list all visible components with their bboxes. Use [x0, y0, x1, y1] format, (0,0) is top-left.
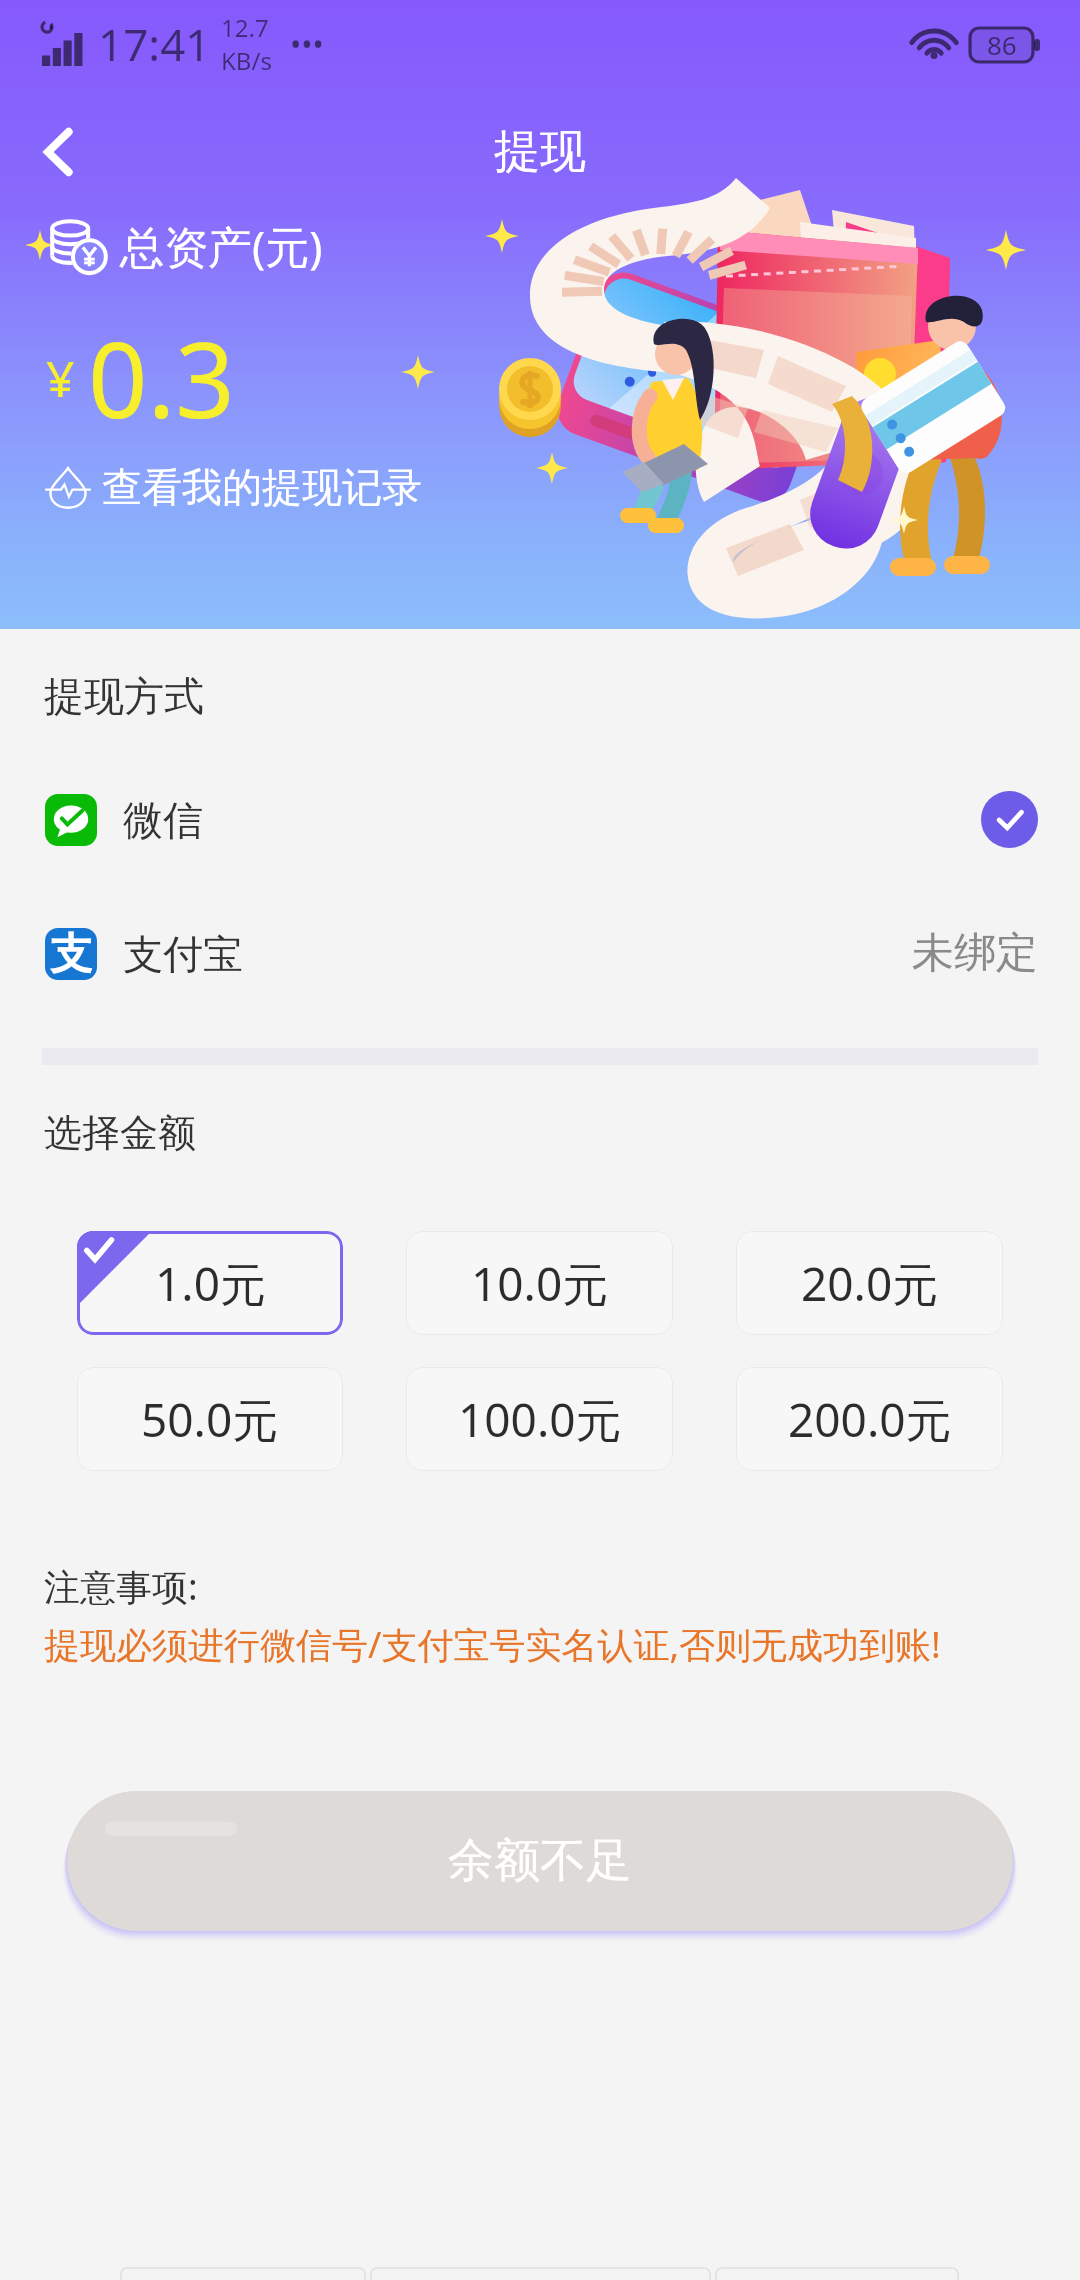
button[interactable]: 已选择微信 [981, 791, 1038, 848]
staticText: 10.0元 [471, 1252, 609, 1315]
staticText: ¥ [46, 344, 75, 412]
button[interactable]: Back [22, 114, 98, 190]
staticText: 1.0元 [155, 1252, 266, 1315]
staticText: 支 [50, 928, 92, 980]
staticText: 12.7 [221, 11, 269, 44]
staticText: 50.0元 [141, 1388, 279, 1451]
button[interactable]: 余额不足 [67, 1791, 1013, 1931]
staticText: 余额不足 [448, 1832, 632, 1890]
staticText: 总资产(元) [120, 216, 323, 276]
staticText: 200.0元 [788, 1388, 952, 1451]
button[interactable]: 200.0元 [736, 1367, 1003, 1471]
staticText: 注意事项: [44, 1562, 198, 1611]
staticText: 选择金额 [44, 1109, 196, 1157]
button[interactable]: 查看我的提现记录 [46, 462, 422, 512]
staticText: 未绑定 [912, 927, 1038, 980]
staticText: 支付宝 [123, 929, 243, 979]
button[interactable]: 1.0元 [77, 1231, 343, 1335]
staticText: 提现必须进行微信号/支付宝号实名认证,否则无成功到账! [44, 1620, 941, 1669]
staticText: 100.0元 [458, 1388, 622, 1451]
staticText: 提现方式 [44, 671, 204, 721]
staticText: KB/s [221, 44, 272, 77]
button[interactable]: 100.0元 [406, 1367, 673, 1471]
staticText: 20.0元 [801, 1252, 939, 1315]
button[interactable]: 10.0元 [406, 1231, 673, 1335]
staticText: ••• [290, 24, 324, 65]
button[interactable]: 50.0元 [77, 1367, 343, 1471]
staticText: 提现 [494, 123, 586, 181]
staticText: 微信 [123, 795, 203, 845]
staticText: 查看我的提现记录 [102, 462, 422, 512]
staticText: 86 [987, 27, 1017, 62]
button[interactable]: 微信 [45, 780, 1038, 859]
staticText: 0.3 [88, 307, 235, 449]
button[interactable]: 支 [45, 914, 1038, 993]
staticText: 17:41 [98, 14, 211, 74]
button[interactable]: 20.0元 [736, 1231, 1003, 1335]
